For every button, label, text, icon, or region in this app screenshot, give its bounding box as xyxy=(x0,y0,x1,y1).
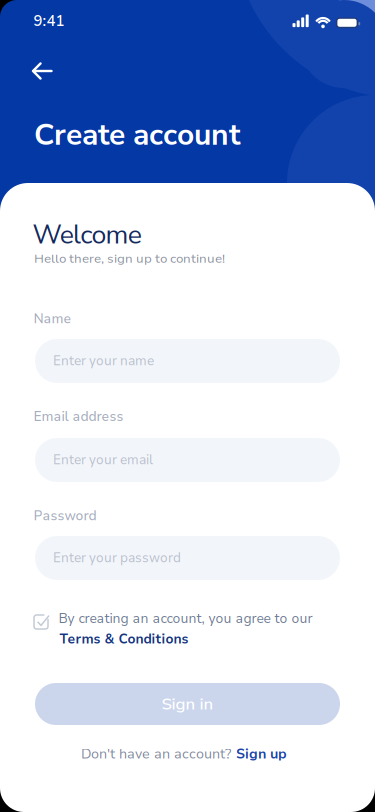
staticText: 9:41 xyxy=(33,11,64,31)
staticText: Terms & Conditions xyxy=(59,630,188,648)
button[interactable]: Sign up xyxy=(236,744,287,763)
staticText: Sign in xyxy=(161,692,213,715)
button[interactable]: Agree to Terms and Conditions xyxy=(32,612,52,632)
button[interactable]: Back xyxy=(27,55,63,87)
staticText: Enter your password xyxy=(53,549,181,567)
staticText: Create account xyxy=(34,114,241,155)
staticText: Welcome xyxy=(33,216,142,253)
button[interactable]: Sign in xyxy=(35,683,340,725)
staticText: Sign up xyxy=(236,744,287,763)
staticText: Email address xyxy=(33,407,123,426)
button[interactable]: Terms & Conditions xyxy=(59,630,188,648)
staticText: Enter your name xyxy=(53,352,154,370)
button[interactable]: Enter your name xyxy=(35,339,340,383)
staticText: Don't have an account? xyxy=(81,744,231,763)
button[interactable]: Enter your password xyxy=(35,536,340,580)
staticText: Name xyxy=(33,310,71,328)
button[interactable]: Enter your email xyxy=(35,438,340,482)
staticText: Enter your email xyxy=(53,451,153,469)
staticText: Password xyxy=(33,507,96,525)
staticText: By creating an account, you agree to our xyxy=(58,609,312,628)
staticText: Hello there, sign up to continue! xyxy=(34,250,225,267)
